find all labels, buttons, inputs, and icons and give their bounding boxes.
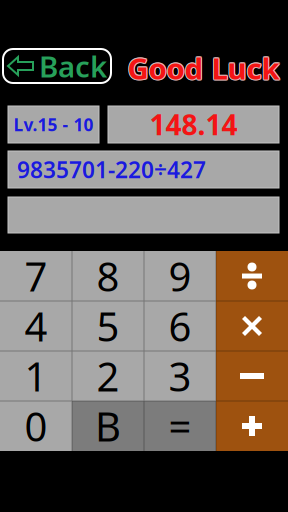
- staticText: B: [95, 399, 121, 452]
- staticText: Good Luck: [128, 48, 280, 87]
- staticText: Good Luck: [127, 49, 279, 88]
- staticText: 7: [24, 249, 47, 302]
- staticText: 5: [96, 299, 119, 352]
- button[interactable]: Multiply: [216, 301, 288, 351]
- button[interactable]: Back: [3, 49, 111, 83]
- button[interactable]: 6: [144, 301, 216, 351]
- staticText: 9: [168, 249, 191, 302]
- staticText: Good Luck: [128, 48, 280, 87]
- staticText: Good Luck: [128, 49, 280, 88]
- staticText: Good Luck: [127, 48, 279, 87]
- staticText: =: [168, 399, 191, 452]
- button[interactable]: 2: [72, 351, 144, 401]
- button[interactable]: Plus: [216, 401, 288, 451]
- button[interactable]: 1: [0, 351, 72, 401]
- button[interactable]: 3: [144, 351, 216, 401]
- staticText: Good Luck: [127, 49, 279, 88]
- staticText: Good Luck: [127, 47, 279, 86]
- button[interactable]: 7: [0, 251, 72, 301]
- button[interactable]: =: [144, 401, 216, 451]
- staticText: 9835701-220÷427: [17, 154, 206, 184]
- button[interactable]: 0: [0, 401, 72, 451]
- button[interactable]: 9: [144, 251, 216, 301]
- staticText: Lv.15 - 10: [13, 113, 93, 136]
- staticText: 3: [168, 349, 191, 402]
- staticText: 4: [24, 299, 47, 352]
- button[interactable]: Minus: [216, 351, 288, 401]
- button[interactable]: 8: [72, 251, 144, 301]
- staticText: Good Luck: [127, 48, 279, 87]
- staticText: Good Luck: [126, 48, 278, 87]
- button[interactable]: 4: [0, 301, 72, 351]
- button[interactable]: Divide: [216, 251, 288, 301]
- staticText: 1: [24, 349, 47, 402]
- staticText: 8: [96, 249, 119, 302]
- staticText: 0: [24, 399, 47, 452]
- staticText: 6: [168, 299, 191, 352]
- button[interactable]: 5: [72, 301, 144, 351]
- button[interactable]: B: [72, 401, 144, 451]
- staticText: 2: [96, 349, 119, 402]
- staticText: 148.14: [149, 106, 237, 143]
- staticText: Back: [39, 46, 107, 85]
